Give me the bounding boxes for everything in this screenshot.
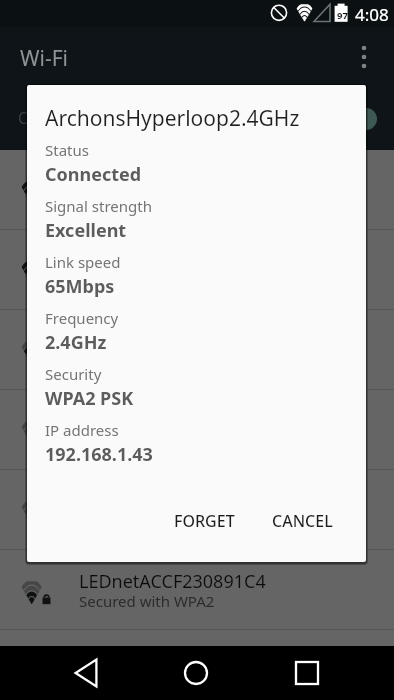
button[interactable]: VM8493021 xyxy=(0,389,394,469)
button[interactable]: ArchonsHyperloop2.4GHz xyxy=(0,149,394,229)
staticText: 192.168.1.43 xyxy=(45,442,153,467)
button[interactable]: SKYB7D2A xyxy=(0,469,394,549)
button[interactable]: Wi-Fi toggle xyxy=(355,108,377,130)
staticText: Signal strength xyxy=(45,196,152,216)
staticText: Excellent xyxy=(45,218,127,243)
staticText: ON xyxy=(18,107,43,129)
staticText: TP-LINK_5A21 xyxy=(79,329,197,354)
staticText: Secured with WPA2 xyxy=(79,431,215,451)
staticText: CANCEL xyxy=(272,510,333,532)
staticText: 65Mbps xyxy=(45,274,115,299)
button[interactable]: More options xyxy=(349,37,379,67)
staticText: WPA2 PSK xyxy=(45,386,134,411)
staticText: ArchonsHyperloop2.4GHz xyxy=(79,169,297,194)
button[interactable]: HyperOptic_2A4B xyxy=(0,229,394,309)
staticText: Secured with WPA2 xyxy=(79,351,215,371)
button[interactable]: Recent apps xyxy=(279,646,335,700)
staticText: ArchonsHyperloop2.4GHz xyxy=(45,104,300,133)
staticText: LEDnetACCF230891C4 xyxy=(79,569,266,594)
staticText: Secured with WPA2 xyxy=(79,271,215,291)
staticText: Connected xyxy=(79,191,155,211)
staticText: 2.4GHz xyxy=(45,330,107,355)
staticText: VM8493021 xyxy=(79,409,179,434)
staticText: Connected xyxy=(45,162,142,187)
staticText: Security xyxy=(45,364,102,384)
staticText: Secured with WPA2 xyxy=(79,511,215,531)
button[interactable]: Back xyxy=(58,646,114,700)
staticText: FORGET xyxy=(174,510,235,532)
button[interactable]: Home xyxy=(168,646,224,700)
staticText: HyperOptic_2A4B xyxy=(79,249,227,274)
staticText: Wi-Fi xyxy=(20,44,69,73)
staticText: Link speed xyxy=(45,252,121,272)
staticText: 4:08 xyxy=(355,3,389,26)
staticText: 97 xyxy=(337,9,348,22)
staticText: Status xyxy=(45,140,89,160)
staticText: Frequency xyxy=(45,308,119,328)
staticText: IP address xyxy=(45,420,119,440)
button[interactable]: CANCEL xyxy=(260,500,345,542)
button[interactable]: TP-LINK_5A21 xyxy=(0,309,394,389)
button[interactable]: LEDnetACCF230891C4 xyxy=(0,549,394,629)
staticText: Secured with WPA2 xyxy=(79,591,215,611)
button[interactable]: FORGET xyxy=(162,500,247,542)
